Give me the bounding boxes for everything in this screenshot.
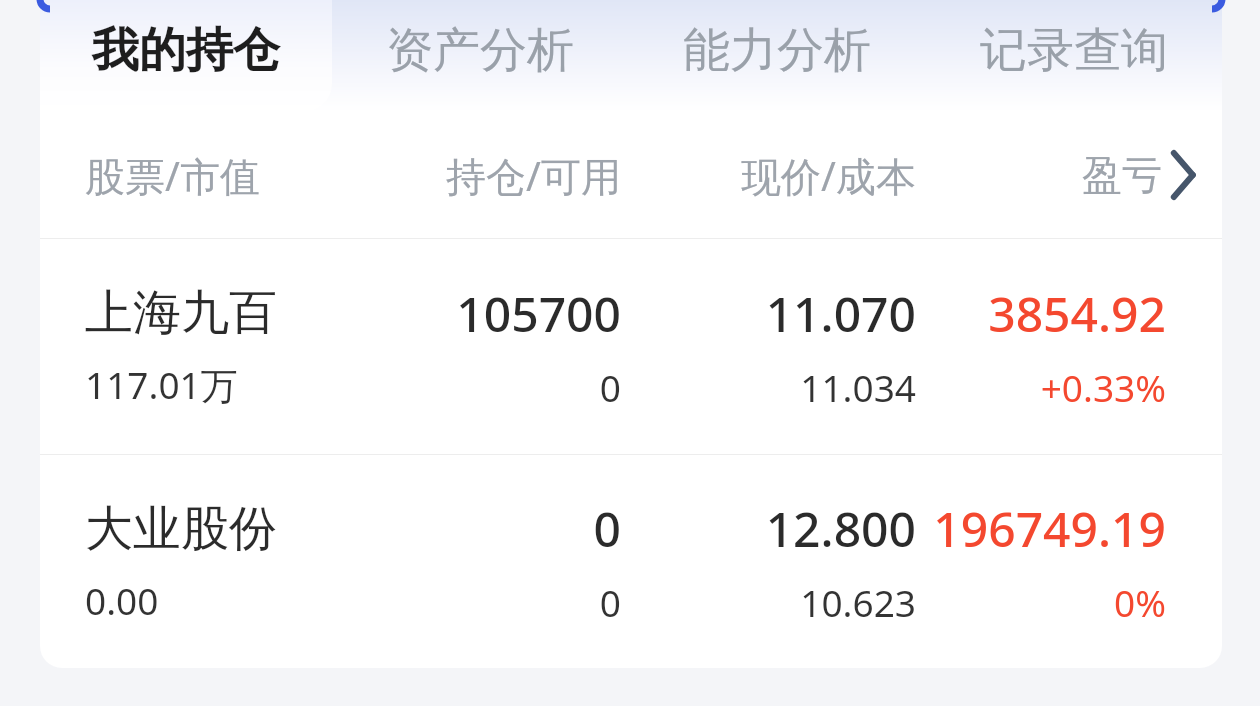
staticText: 105700 [456,281,621,346]
staticText: 0% [1114,577,1166,627]
button[interactable]: 上海九百 [40,239,1222,454]
staticText: 盈亏 [1082,150,1162,200]
staticText: 记录查询 [980,21,1168,80]
staticText: 0 [599,362,621,412]
staticText: 117.01万 [85,359,238,410]
button[interactable]: 资产分析 [332,0,628,112]
button[interactable]: 我的持仓 [40,0,332,112]
staticText: 股票/市值 [85,148,260,203]
button[interactable]: 能力分析 [628,0,925,112]
staticText: 0.00 [85,575,159,625]
staticText: 3854.92 [988,281,1166,346]
button[interactable]: 股票/市值 [40,112,1222,238]
staticText: 12.800 [765,496,916,561]
other: 展开盈亏 [1162,112,1208,238]
staticText: 资产分析 [386,21,574,80]
button[interactable]: 大业股份 [40,455,1222,668]
staticText: 我的持仓 [92,21,280,80]
staticText: 10.623 [800,577,916,627]
staticText: 能力分析 [683,21,871,80]
staticText: 大业股份 [85,499,277,559]
staticText: 0 [599,577,621,627]
staticText: 0 [593,496,621,561]
staticText: 11.034 [800,362,916,412]
staticText: 11.070 [765,281,916,346]
staticText: 现价/成本 [741,148,916,203]
staticText: 持仓/可用 [446,148,621,203]
staticText: +0.33% [1040,362,1166,412]
button[interactable]: 记录查询 [925,0,1222,112]
staticText: 196749.19 [933,496,1166,561]
staticText: 上海九百 [85,283,277,343]
